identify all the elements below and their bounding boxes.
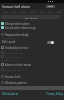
staticText: Delete alarm bbox=[2, 92, 19, 96]
button[interactable]: Radio bbox=[1, 51, 4, 54]
button[interactable]: Checked bbox=[1, 22, 4, 25]
staticText: Wed bbox=[21, 11, 26, 14]
button[interactable]: Radio bbox=[1, 68, 4, 71]
button[interactable]: SAVE bbox=[46, 5, 55, 8]
button[interactable]: Sun bbox=[55, 10, 63, 14]
button[interactable]: Checked bbox=[1, 26, 4, 29]
staticText: Sound when alarm rings bbox=[5, 26, 36, 30]
staticText: Mon bbox=[3, 11, 8, 14]
staticText: Privacy Policy bbox=[46, 92, 63, 96]
button[interactable]: Radio bbox=[1, 55, 4, 58]
staticText: Fri bbox=[40, 11, 43, 14]
button[interactable]: Radio bbox=[1, 75, 4, 78]
staticText: SAVE bbox=[48, 5, 53, 8]
button[interactable]: 06 : 30 AM bbox=[1, 15, 60, 19]
staticText: Vibrate when alarm bbox=[5, 22, 30, 26]
button[interactable]: Sat bbox=[46, 10, 54, 14]
staticText: 06 : 30 AM bbox=[25, 16, 37, 19]
button[interactable]: Checkbox bbox=[1, 63, 4, 66]
staticText: Gradually increase bbox=[5, 46, 29, 50]
staticText: Thu bbox=[30, 11, 35, 14]
button[interactable]: Radio bbox=[1, 81, 4, 84]
button[interactable]: Wed bbox=[19, 10, 27, 14]
staticText: Auto silence bbox=[5, 55, 20, 58]
staticText: Sat bbox=[48, 11, 52, 14]
button[interactable]: Toggle bbox=[47, 41, 54, 44]
staticText: Weekend skip bbox=[5, 68, 22, 71]
staticText: Other options bbox=[2, 59, 18, 62]
staticText: Snooze bell alarm bbox=[2, 4, 31, 9]
staticText: Bell sound bbox=[2, 40, 16, 44]
staticText: Alarm in silent mode bbox=[5, 63, 32, 67]
staticText: Snooze interval bbox=[5, 51, 24, 54]
button[interactable]: Fri bbox=[37, 10, 45, 14]
staticText: Vibration pattern bbox=[5, 81, 27, 85]
button[interactable]: Tue bbox=[10, 10, 18, 14]
button[interactable]: Mon bbox=[1, 10, 9, 14]
staticText: Sun bbox=[57, 11, 62, 14]
button[interactable]: Thu bbox=[28, 10, 36, 14]
button[interactable]: Radio bbox=[1, 33, 4, 36]
button[interactable]: Checkbox bbox=[1, 46, 4, 49]
staticText: Snooze limit bbox=[5, 75, 21, 79]
staticText: Repeat alarm daily bbox=[5, 33, 29, 37]
staticText: Alarm sound bbox=[2, 37, 16, 40]
staticText: Tue bbox=[12, 11, 16, 14]
